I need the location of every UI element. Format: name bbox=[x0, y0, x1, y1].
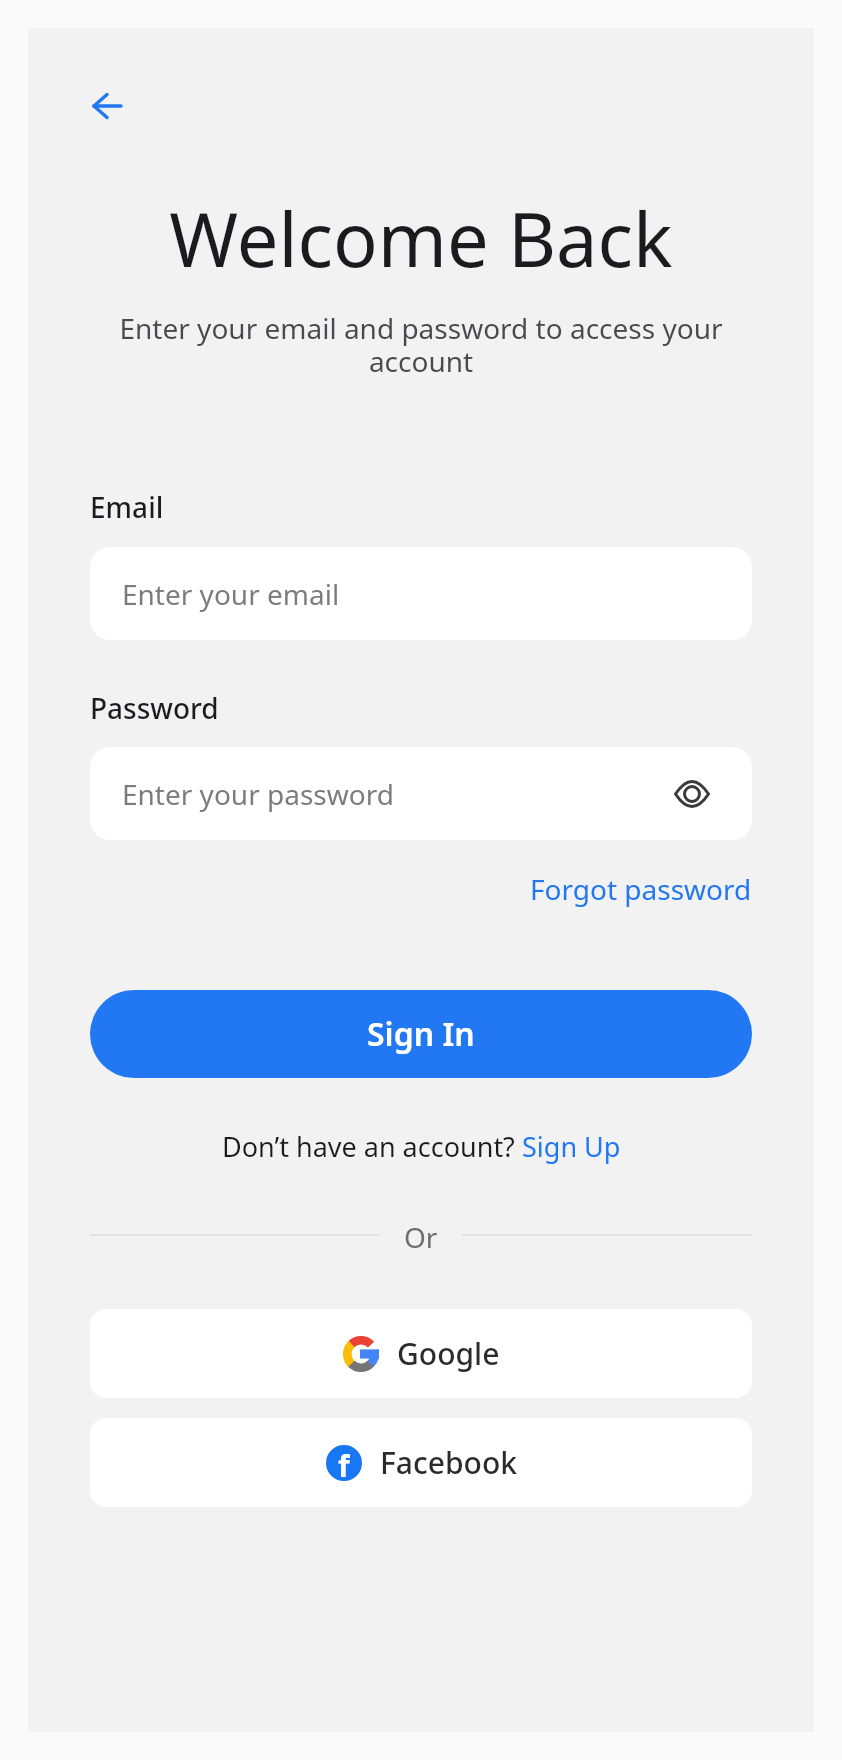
button[interactable] bbox=[90, 92, 124, 120]
staticText: Password bbox=[90, 689, 219, 727]
staticText: Or bbox=[404, 1218, 438, 1252]
staticText: Enter your password bbox=[122, 775, 394, 813]
staticText: Email bbox=[90, 488, 164, 526]
staticText: Facebook bbox=[380, 1442, 517, 1483]
staticText: Sign In bbox=[367, 1012, 475, 1056]
staticText: Welcome Back bbox=[90, 188, 752, 289]
button[interactable]: Enter your email bbox=[90, 547, 752, 640]
staticText: Google bbox=[397, 1333, 500, 1374]
button[interactable]: Sign Up bbox=[522, 1128, 621, 1165]
button[interactable]: Sign In bbox=[90, 990, 752, 1078]
staticText: Enter your email and password to access … bbox=[90, 309, 752, 380]
staticText: Don’t have an account? bbox=[222, 1128, 522, 1165]
button[interactable]: Forgot password bbox=[530, 870, 752, 908]
button[interactable]: Enter your password bbox=[90, 747, 752, 840]
staticText: f bbox=[338, 1445, 350, 1478]
button[interactable]: Google bbox=[90, 1309, 752, 1398]
button[interactable]: f bbox=[90, 1418, 752, 1507]
button[interactable] bbox=[670, 776, 714, 812]
staticText: Enter your email bbox=[122, 575, 340, 613]
